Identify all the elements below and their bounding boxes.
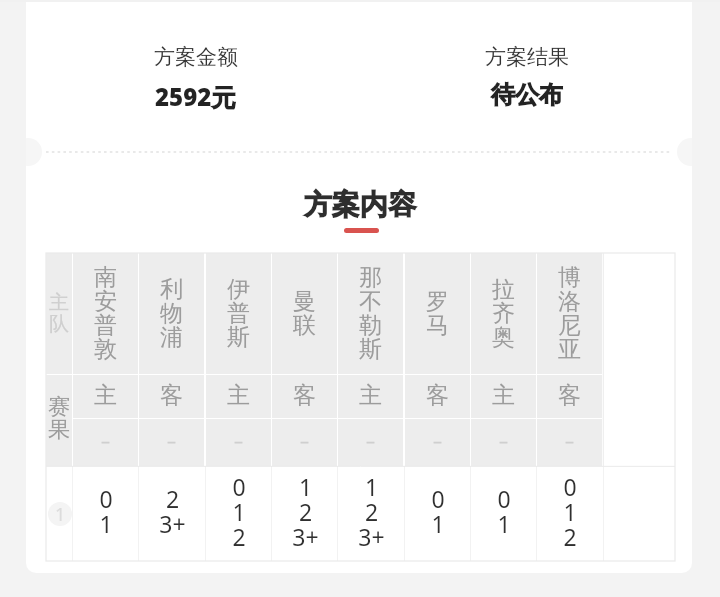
staticText: 罗 马 [426, 287, 449, 340]
staticText: 0 1 [497, 483, 511, 540]
staticText: 0 1 [99, 483, 113, 540]
staticText: 待公布 [491, 80, 563, 110]
staticText: 客 [426, 381, 449, 410]
button[interactable]: 0 1 [471, 466, 537, 561]
staticText: – [499, 429, 508, 454]
button[interactable]: 1 2 3+ [272, 466, 338, 561]
staticText: 客 [160, 381, 183, 410]
staticText: 2 3+ [159, 483, 186, 540]
staticText: 0 1 2 [563, 471, 577, 553]
staticText: 方案金额 [154, 44, 238, 70]
staticText: 那 不 勒 斯 [359, 263, 382, 364]
staticText: – [234, 429, 243, 454]
staticText: 2592元 [155, 80, 236, 113]
button[interactable]: 利 物 浦 [139, 253, 204, 374]
button[interactable]: 2 3+ [139, 466, 205, 561]
button[interactable]: 伊 普 斯 [206, 253, 271, 374]
staticText: 1 [55, 502, 66, 526]
staticText: 1 2 3+ [358, 471, 385, 553]
staticText: 方案内容 [304, 187, 416, 222]
button[interactable]: 0 1 2 [537, 466, 603, 561]
staticText: 1 2 3+ [292, 471, 319, 553]
staticText: – [101, 429, 110, 454]
button[interactable]: 1 2 3+ [338, 466, 404, 561]
button[interactable]: 曼 联 [272, 253, 337, 374]
button[interactable]: 博 洛 尼 亚 [537, 253, 602, 374]
staticText: 主 [492, 381, 515, 410]
staticText: 拉 齐 奥 [492, 275, 515, 352]
staticText: 主 [359, 381, 382, 410]
button[interactable]: 0 1 [73, 466, 139, 561]
button[interactable]: 那 不 勒 斯 [338, 253, 403, 374]
staticText: 客 [558, 381, 581, 410]
staticText: 伊 普 斯 [227, 275, 250, 352]
button[interactable]: 第1注 [46, 466, 73, 561]
button[interactable]: 方案结果 [361, 0, 693, 150]
staticText: 客 [293, 381, 316, 410]
staticText: – [565, 429, 574, 454]
staticText: – [167, 429, 176, 454]
button[interactable]: 罗 马 [405, 253, 470, 374]
staticText: – [300, 429, 309, 454]
staticText: 主 [227, 381, 250, 410]
staticText: – [433, 429, 442, 454]
button[interactable]: 0 1 [405, 466, 471, 561]
staticText: 赛 果 [48, 393, 70, 444]
staticText: 主 [94, 381, 117, 410]
staticText: 曼 联 [293, 287, 316, 340]
staticText: 方案结果 [485, 44, 569, 70]
staticText: 0 1 2 [232, 471, 246, 553]
staticText: 0 1 [431, 483, 445, 540]
staticText: 主 队 [49, 290, 69, 337]
button[interactable]: 拉 齐 奥 [471, 253, 536, 374]
staticText: 博 洛 尼 亚 [558, 263, 581, 364]
staticText: – [366, 429, 375, 454]
staticText: 南 安 普 敦 [94, 263, 117, 364]
button[interactable]: 0 1 2 [206, 466, 272, 561]
button[interactable]: 方案金额 [30, 0, 361, 150]
button[interactable]: 南 安 普 敦 [73, 253, 138, 374]
staticText: 利 物 浦 [160, 275, 183, 352]
